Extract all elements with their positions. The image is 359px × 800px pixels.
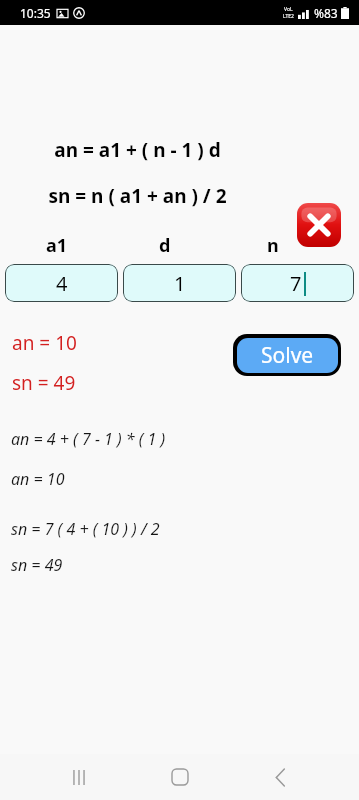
staticText: an = a1 + ( n - 1 ) d bbox=[0, 137, 275, 163]
staticText: an = 10 bbox=[12, 330, 77, 356]
button[interactable]: Back bbox=[258, 755, 302, 799]
staticText: sn = n ( a1 + an ) / 2 bbox=[0, 183, 275, 209]
staticText: 10:35 bbox=[20, 5, 51, 21]
staticText: sn = 49 bbox=[11, 554, 63, 576]
staticText: VoL bbox=[284, 6, 293, 13]
staticText: d bbox=[159, 233, 171, 258]
staticText: 7 bbox=[290, 270, 302, 297]
button[interactable]: Home bbox=[158, 755, 202, 799]
staticText: 1 bbox=[174, 270, 186, 297]
staticText: Solve bbox=[261, 341, 314, 370]
button[interactable]: 1 bbox=[123, 264, 236, 302]
button[interactable]: Recents bbox=[57, 755, 101, 799]
staticText: n bbox=[267, 233, 279, 258]
button[interactable]: Clear bbox=[297, 203, 341, 247]
staticText: sn = 7 ( 4 + ( 10 ) ) / 2 bbox=[11, 518, 160, 540]
staticText: an = 4 + ( 7 - 1 ) * ( 1 ) bbox=[11, 428, 166, 450]
button[interactable]: 7 bbox=[241, 264, 354, 302]
button[interactable]: 4 bbox=[5, 264, 118, 302]
staticText: an = 10 bbox=[11, 468, 65, 490]
staticText: 4 bbox=[56, 270, 68, 297]
staticText: LTE2 bbox=[283, 13, 294, 20]
staticText: sn = 49 bbox=[12, 370, 76, 396]
button[interactable]: Solve bbox=[233, 334, 341, 376]
staticText: %83 bbox=[314, 5, 338, 21]
staticText: a1 bbox=[46, 233, 68, 258]
